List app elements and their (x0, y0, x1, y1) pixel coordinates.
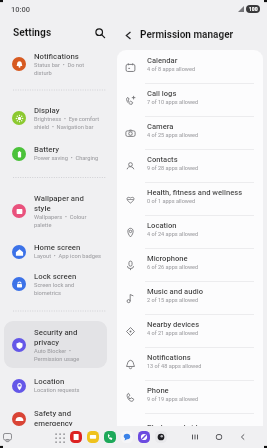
button[interactable]: Security and privacy (4, 321, 107, 368)
staticText: 2 of 15 apps allowed (147, 297, 199, 304)
staticText: Battery (34, 145, 60, 154)
staticText: 4 of 8 apps allowed (147, 66, 196, 73)
staticText: 9 of 28 apps allowed (147, 165, 199, 172)
staticText: Call logs (147, 89, 177, 98)
button[interactable]: Microphone (117, 246, 263, 279)
button[interactable]: Location (117, 213, 263, 246)
staticText: Camera (147, 122, 174, 131)
staticText: Location requests (34, 387, 80, 394)
staticText: 4 of 24 apps allowed (147, 231, 199, 238)
button[interactable]: Lock screen (4, 267, 107, 301)
button[interactable]: Music and audio (117, 279, 263, 312)
staticText: 13 of 48 apps allowed (147, 363, 202, 370)
button[interactable]: Safety and emergency (4, 403, 107, 434)
button[interactable]: Notifications (117, 345, 263, 378)
button[interactable]: Camera (117, 114, 263, 147)
button[interactable]: back (237, 431, 249, 443)
staticText: Home screen (34, 243, 81, 252)
button[interactable]: Contacts (117, 147, 263, 180)
button[interactable]: Nearby devices (117, 312, 263, 345)
button[interactable]: Display (4, 99, 107, 136)
button[interactable]: DeX mode (1, 431, 14, 444)
staticText: Location (147, 221, 177, 230)
staticText: 100 (249, 6, 258, 12)
button[interactable]: Battery (4, 138, 107, 168)
staticText: Permission manager (140, 29, 234, 41)
staticText: Location (34, 377, 65, 386)
staticText: Notifications (147, 353, 191, 362)
staticText: Nearby devices (147, 320, 200, 329)
button[interactable]: Home screen (4, 237, 107, 265)
staticText: Brightness • Eye comfort shield • Naviga… (34, 116, 100, 130)
staticText: Display (34, 106, 60, 115)
button[interactable]: Photos and videos (117, 411, 263, 444)
button[interactable]: App (104, 431, 116, 443)
staticText: Security and privacy (34, 328, 78, 347)
staticText: Calendar (147, 56, 178, 65)
staticText: Photos and videos (147, 423, 210, 432)
button[interactable]: home (213, 431, 225, 443)
staticText: Music and audio (147, 287, 204, 296)
staticText: 4 of 25 apps allowed (147, 132, 199, 139)
button[interactable]: App (138, 431, 150, 443)
staticText: Phone (147, 386, 169, 395)
button[interactable]: Wallpaper and style (4, 187, 107, 235)
button[interactable]: Back (121, 28, 135, 42)
staticText: Screen lock and biometrics (34, 282, 75, 296)
staticText: 0 of 1 apps allowed (147, 198, 196, 205)
staticText: Safety and emergency (34, 409, 73, 428)
button[interactable]: App (70, 431, 82, 443)
staticText: 6 of 26 apps allowed (147, 264, 199, 271)
staticText: Notifications (34, 52, 79, 61)
button[interactable]: Call logs (117, 81, 263, 114)
button[interactable]: Search (91, 24, 109, 42)
button[interactable]: Apps (54, 432, 65, 443)
staticText: Wallpapers • Colour palette (34, 214, 87, 228)
staticText: Microphone (147, 254, 188, 263)
staticText: Power saving • Charging (34, 155, 99, 162)
staticText: Health, fitness and wellness (147, 188, 243, 197)
button[interactable]: Location (4, 370, 107, 401)
staticText: 9 of 19 apps allowed (147, 396, 199, 403)
staticText: Lock screen (34, 272, 77, 281)
button[interactable]: Calendar (117, 50, 263, 81)
staticText: Status bar • Do not disturb (34, 62, 85, 76)
button[interactable]: App (155, 431, 167, 443)
staticText: Contacts (147, 155, 178, 164)
button[interactable]: Phone (117, 378, 263, 411)
button[interactable]: recents (189, 431, 201, 443)
button[interactable]: Notifications (4, 47, 107, 81)
button[interactable]: App (121, 431, 133, 443)
staticText: 4 of 21 apps allowed (147, 330, 199, 337)
button[interactable]: App (87, 431, 99, 443)
staticText: 7 of 10 apps allowed (147, 99, 199, 106)
button[interactable]: Health, fitness and wellness (117, 180, 263, 213)
staticText: Settings (13, 27, 52, 39)
staticText: 10:00 (11, 5, 31, 14)
staticText: Wallpaper and style (34, 194, 84, 213)
staticText: Layout • App icon badges (34, 253, 101, 260)
staticText: Auto Blocker • Permission usage (34, 348, 80, 362)
